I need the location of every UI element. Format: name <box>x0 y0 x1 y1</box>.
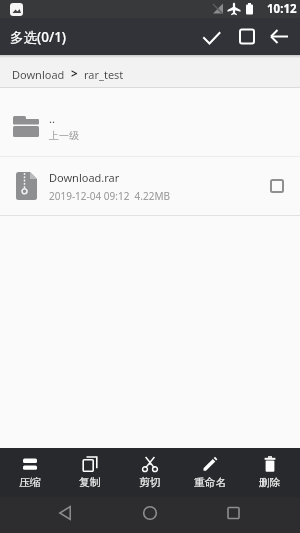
button[interactable] <box>261 18 300 55</box>
button[interactable]: 删除 <box>240 448 300 497</box>
button[interactable]: 压缩 <box>0 448 60 497</box>
staticText: > <box>71 66 78 82</box>
staticText: .. <box>49 111 55 126</box>
staticText: 复制 <box>79 476 101 490</box>
button[interactable]: .. <box>0 96 300 156</box>
button[interactable]: 剪切 <box>120 448 180 497</box>
button[interactable] <box>0 497 100 533</box>
staticText: 删除 <box>259 476 281 490</box>
button[interactable] <box>200 497 300 533</box>
button[interactable] <box>270 179 284 193</box>
button[interactable]: 重命名 <box>180 448 240 497</box>
staticText: 10:12 <box>267 1 297 17</box>
button[interactable] <box>196 18 226 55</box>
button[interactable]: Download.rar <box>0 157 300 215</box>
button[interactable]: Download <box>12 67 65 82</box>
button[interactable]: 复制 <box>60 448 120 497</box>
staticText: 压缩 <box>19 476 41 490</box>
button[interactable] <box>100 497 200 533</box>
staticText: Download.rar <box>49 170 120 185</box>
button[interactable] <box>226 18 261 55</box>
staticText: 上一级 <box>49 129 79 142</box>
staticText: 重命名 <box>194 476 227 490</box>
staticText: 多选(0/1) <box>10 28 67 46</box>
staticText: 剪切 <box>139 476 161 490</box>
button[interactable]: rar_test <box>84 67 124 82</box>
staticText: 2019-12-04 09:12 4.22MB <box>49 189 170 203</box>
